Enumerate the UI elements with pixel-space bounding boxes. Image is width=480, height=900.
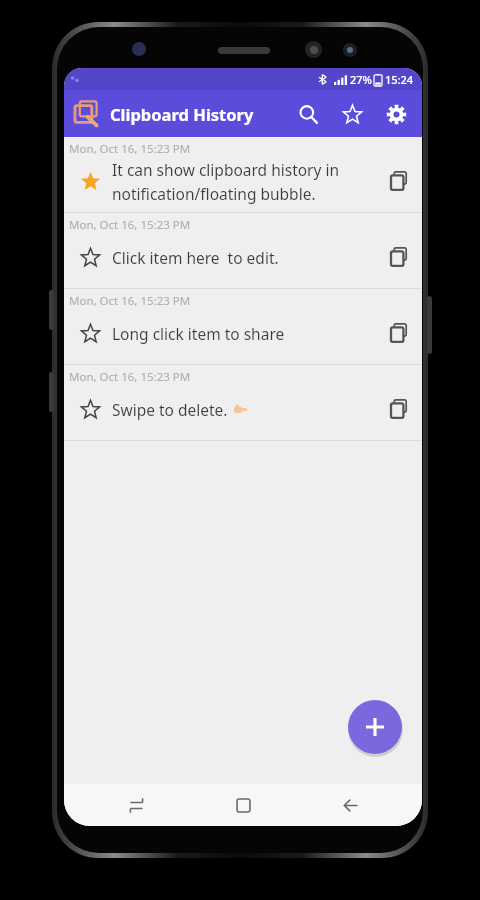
staticText: notification/floating bubble. bbox=[112, 183, 316, 204]
staticText: Click item here to edit. bbox=[112, 247, 279, 268]
button[interactable]: Add clip bbox=[348, 700, 402, 754]
staticText: Mon, Oct 16, 15:23 PM bbox=[69, 141, 191, 157]
button[interactable]: Favorites bbox=[330, 92, 374, 136]
button[interactable]: Search bbox=[286, 92, 330, 136]
staticText: It can show clipboard history in bbox=[112, 159, 340, 180]
staticText: Mon, Oct 16, 15:23 PM bbox=[69, 217, 191, 233]
button[interactable]: Copy bbox=[376, 310, 422, 356]
button[interactable]: Copy bbox=[376, 386, 422, 432]
button[interactable]: Favorite bbox=[76, 319, 104, 347]
staticText: Clipboard History bbox=[110, 103, 254, 125]
staticText: 15:24 bbox=[385, 72, 414, 87]
button[interactable]: Favorite bbox=[76, 243, 104, 271]
staticText: Swipe to delete. bbox=[112, 399, 228, 420]
button[interactable]: Favorite bbox=[76, 395, 104, 423]
button[interactable]: Mon, Oct 16, 15:23 PM bbox=[64, 213, 422, 288]
button[interactable]: Back bbox=[315, 784, 385, 826]
button[interactable]: Mon, Oct 16, 15:23 PM bbox=[64, 365, 422, 440]
button[interactable]: Copy bbox=[376, 158, 422, 204]
button[interactable]: Unfavorite bbox=[76, 167, 104, 195]
button[interactable]: Settings bbox=[374, 92, 418, 136]
button[interactable]: Mon, Oct 16, 15:23 PM bbox=[64, 289, 422, 364]
button[interactable]: Recents bbox=[101, 784, 171, 826]
button[interactable]: Home bbox=[208, 784, 278, 826]
staticText: Mon, Oct 16, 15:23 PM bbox=[69, 293, 191, 309]
staticText: 27% bbox=[350, 72, 372, 87]
staticText: Mon, Oct 16, 15:23 PM bbox=[69, 369, 191, 385]
button[interactable]: Mon, Oct 16, 15:23 PM bbox=[64, 137, 422, 212]
button[interactable]: Copy bbox=[376, 234, 422, 280]
staticText: Long click item to share bbox=[112, 323, 285, 344]
